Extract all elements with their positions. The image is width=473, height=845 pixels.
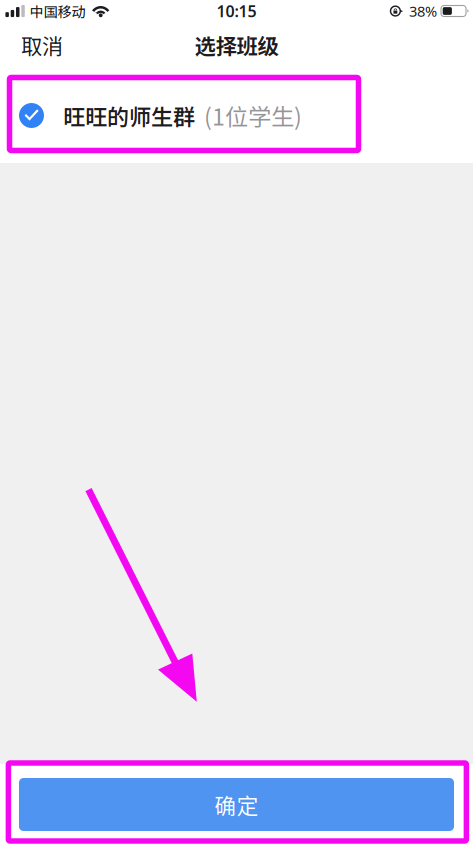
staticText: 取消 bbox=[21, 30, 63, 60]
staticText: 确定 bbox=[214, 789, 258, 820]
button[interactable]: 取消 bbox=[0, 22, 79, 68]
staticText: 旺旺的师生群 bbox=[63, 99, 195, 131]
staticText: 选择班级 bbox=[194, 30, 278, 60]
staticText: 38% bbox=[409, 1, 437, 21]
button[interactable]: 旺旺的师生群 bbox=[0, 68, 473, 163]
button[interactable]: 确定 bbox=[19, 778, 454, 831]
staticText: (1位学生) bbox=[204, 99, 302, 132]
staticText: 中国移动 bbox=[29, 1, 85, 21]
staticText: 10:15 bbox=[216, 0, 256, 22]
